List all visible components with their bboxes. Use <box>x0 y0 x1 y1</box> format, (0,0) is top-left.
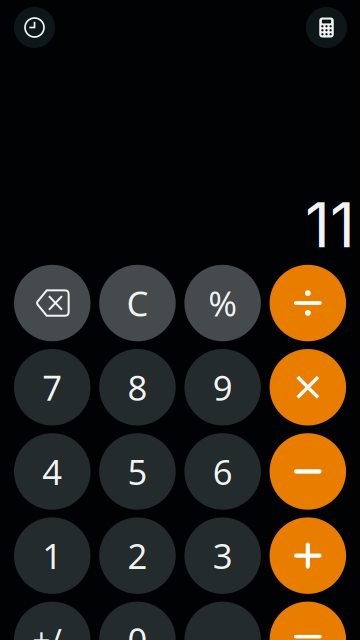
button[interactable]: 6 <box>184 433 261 510</box>
button[interactable]: 3 <box>184 517 261 594</box>
button[interactable]: 2 <box>99 517 176 594</box>
button[interactable]: History <box>14 7 55 48</box>
button[interactable]: Calculator <box>306 7 347 48</box>
staticText: 9 <box>213 364 233 410</box>
button[interactable]: 1 <box>14 517 90 594</box>
button[interactable]: Subtract <box>270 433 346 510</box>
button[interactable]: Equals <box>270 602 346 640</box>
button[interactable]: C <box>99 265 176 341</box>
staticText: 11 <box>305 188 355 262</box>
button[interactable]: 8 <box>99 349 176 425</box>
staticText: 8 <box>127 364 147 410</box>
staticText: 3 <box>213 533 233 579</box>
button[interactable]: Multiply <box>270 349 346 425</box>
button[interactable]: Add <box>270 517 346 594</box>
button[interactable]: 9 <box>184 349 261 425</box>
staticText: 1 <box>42 533 62 579</box>
button[interactable]: Divide <box>270 265 346 341</box>
staticText: 4 <box>42 448 62 494</box>
button[interactable]: 4 <box>14 433 90 510</box>
button[interactable]: % <box>184 265 261 341</box>
button[interactable]: 5 <box>99 433 176 510</box>
staticText: 5 <box>127 448 147 494</box>
staticText: 6 <box>213 448 233 494</box>
staticText: % <box>208 280 237 326</box>
button[interactable]: 7 <box>14 349 90 425</box>
staticText: 0 <box>127 617 147 640</box>
button[interactable]: Backspace <box>14 265 90 341</box>
button[interactable]: +/- <box>14 602 90 640</box>
staticText: C <box>126 280 148 326</box>
staticText: 7 <box>42 364 62 410</box>
staticText: 2 <box>127 533 147 579</box>
staticText: +/- <box>32 619 72 640</box>
button[interactable]: 0 <box>99 602 176 640</box>
button[interactable]: . <box>184 602 261 640</box>
